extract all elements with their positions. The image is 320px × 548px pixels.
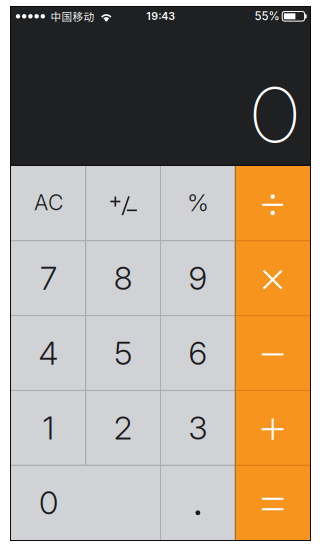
button[interactable]: Toggle sign bbox=[86, 166, 161, 241]
button[interactable]: 0 bbox=[11, 465, 160, 540]
button[interactable]: Equals bbox=[235, 465, 310, 540]
staticText: 6 bbox=[188, 334, 207, 372]
staticText: 3 bbox=[188, 408, 207, 447]
button[interactable]: 3 bbox=[160, 390, 235, 465]
button[interactable]: % bbox=[160, 166, 235, 241]
staticText: % bbox=[187, 188, 209, 217]
staticText: 9 bbox=[188, 259, 207, 297]
button[interactable]: Subtract bbox=[235, 316, 310, 390]
staticText: AC bbox=[34, 189, 63, 215]
staticText: 7 bbox=[40, 259, 57, 297]
button[interactable]: AC bbox=[11, 166, 86, 241]
staticText: 0 bbox=[39, 483, 58, 522]
staticText: 0 bbox=[248, 62, 301, 163]
button[interactable]: 2 bbox=[86, 390, 161, 465]
button[interactable]: 1 bbox=[11, 390, 86, 465]
button[interactable]: 7 bbox=[11, 241, 86, 316]
staticText: 5 bbox=[114, 334, 132, 372]
staticText: 2 bbox=[114, 408, 133, 447]
button[interactable]: Divide bbox=[235, 166, 310, 241]
button[interactable]: Add bbox=[235, 390, 310, 465]
staticText: 19:43 bbox=[146, 10, 175, 23]
staticText: 55% bbox=[255, 9, 280, 23]
button[interactable]: Decimal point bbox=[160, 465, 235, 540]
staticText: 4 bbox=[38, 334, 58, 372]
button[interactable]: 6 bbox=[160, 316, 235, 390]
staticText: 中国移动 bbox=[51, 8, 95, 24]
button[interactable]: Multiply bbox=[235, 241, 310, 316]
button[interactable]: 4 bbox=[11, 316, 86, 390]
staticText: 8 bbox=[114, 259, 133, 297]
staticText: 1 bbox=[42, 408, 54, 447]
button[interactable]: 9 bbox=[160, 241, 235, 316]
button[interactable]: 5 bbox=[86, 316, 161, 390]
button[interactable]: 8 bbox=[86, 241, 161, 316]
